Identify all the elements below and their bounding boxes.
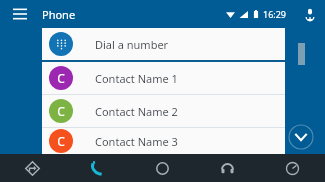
button[interactable]: Menu	[8, 2, 32, 26]
button[interactable]: C	[42, 128, 285, 154]
button[interactable]: Home	[130, 154, 195, 182]
button[interactable]: Navigation	[0, 154, 65, 182]
button[interactable]: Recent	[260, 154, 325, 182]
staticText: C	[57, 70, 65, 86]
button[interactable]: C	[42, 95, 285, 127]
staticText: Contact Name 2	[95, 104, 178, 119]
button[interactable]: Phone	[65, 154, 130, 182]
staticText: 16:29	[263, 8, 287, 20]
button[interactable]: Media	[195, 154, 260, 182]
staticText: Dial a number	[95, 37, 169, 52]
button[interactable]: Scroll down	[288, 124, 314, 150]
staticText: C	[57, 133, 65, 149]
staticText: Phone	[42, 7, 76, 22]
staticText: Contact Name 3	[95, 134, 178, 149]
staticText: C	[57, 103, 65, 119]
button[interactable]: C	[42, 62, 285, 94]
button[interactable]: Dial a number	[42, 28, 285, 60]
button[interactable]: Voice search	[301, 5, 319, 23]
staticText: Contact Name 1	[95, 71, 178, 86]
